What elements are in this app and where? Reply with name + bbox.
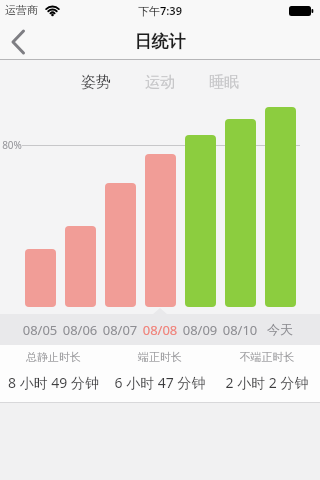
button[interactable] [145,154,176,307]
button[interactable]: 睡眠 [192,66,256,98]
staticText: 睡眠 [192,73,256,92]
button[interactable]: 姿势 [64,66,128,98]
staticText: 6 小时 47 分钟 [100,373,220,392]
staticText: 今天 [256,321,304,337]
staticText: 08/09 [176,321,224,339]
staticText: 下午7:39 [100,3,220,18]
button[interactable] [225,119,256,307]
staticText: 总静止时长 [0,350,107,364]
button[interactable] [185,135,216,307]
staticText: 不端正时长 [207,350,320,364]
staticText: 8 小时 49 分钟 [0,373,107,392]
staticText: 08/05 [16,321,64,339]
staticText: 80% [1,138,23,152]
button[interactable] [65,226,96,307]
staticText: 运动 [128,73,192,92]
staticText: 08/10 [216,321,264,339]
staticText: 08/06 [56,321,104,339]
staticText: 2 小时 2 分钟 [207,373,320,392]
staticText: 08/08 [136,321,184,339]
button[interactable] [265,107,296,307]
button[interactable]: 运动 [128,66,192,98]
button[interactable] [4,26,36,58]
button[interactable] [105,183,136,307]
staticText: 运营商 [5,3,65,17]
button[interactable] [25,249,56,307]
staticText: 日统计 [100,31,220,52]
staticText: 端正时长 [100,350,220,364]
staticText: 08/07 [96,321,144,339]
staticText: 姿势 [64,73,128,92]
